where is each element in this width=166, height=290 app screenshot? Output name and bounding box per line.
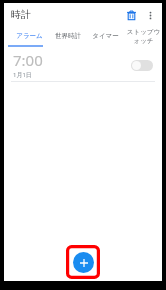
button[interactable]: More options [141,6,159,24]
staticText: タイマー [92,32,119,40]
button[interactable]: ストップウォッチ [125,26,162,45]
button[interactable]: Alarm toggle [131,59,153,71]
button[interactable]: Add alarm [66,245,100,279]
button[interactable]: タイマー [88,26,122,45]
button[interactable]: アラーム [11,26,48,45]
staticText: アラーム [16,32,43,40]
staticText: 時計 [11,8,31,21]
button[interactable]: 世界時計 [51,26,85,45]
staticText: 世界時計 [55,32,81,40]
staticText: ストップウォッチ [125,28,162,44]
staticText: 7:00 [13,50,43,70]
button[interactable]: Delete [121,5,141,25]
staticText: 1月1日 [13,71,32,79]
button[interactable]: 7:00 [4,48,162,81]
